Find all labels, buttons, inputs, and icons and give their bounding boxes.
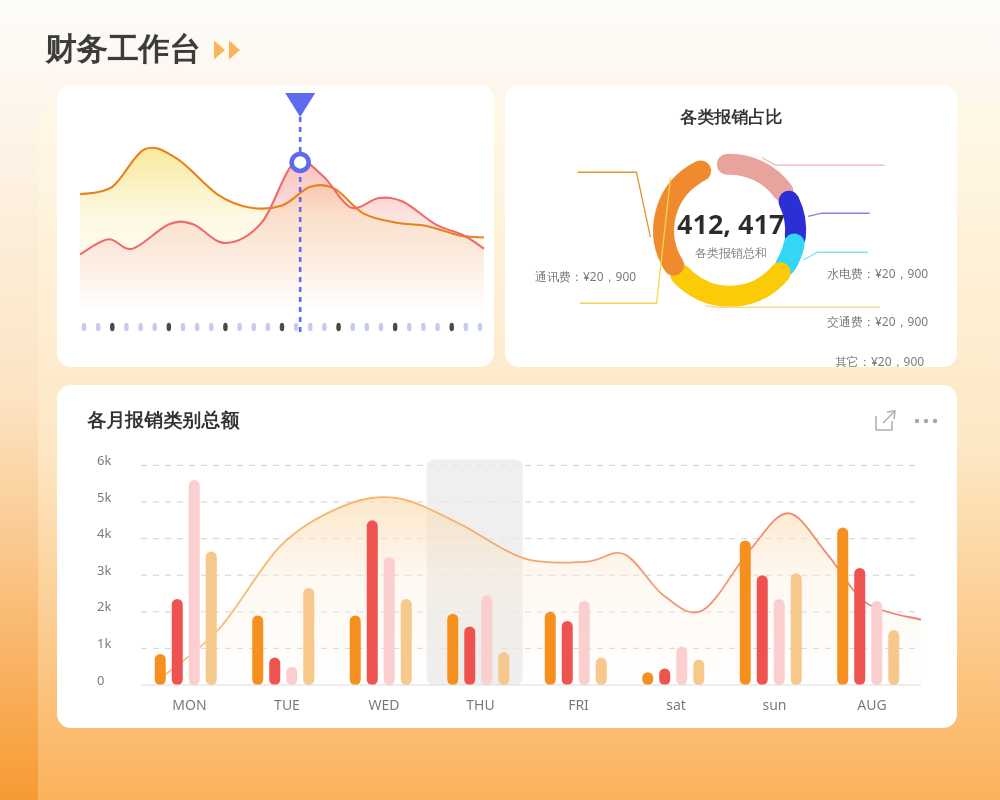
button[interactable]: More options <box>913 407 941 435</box>
button[interactable]: Share <box>871 407 899 435</box>
staticText: 通讯费：¥20，900 <box>535 268 637 284</box>
staticText: FRI <box>568 695 589 714</box>
staticText: AUG <box>857 695 887 714</box>
staticText: 4k <box>97 524 112 542</box>
staticText: 各类报销总和 <box>695 245 767 260</box>
staticText: 各月报销类别总额 <box>87 409 239 433</box>
staticText: 3k <box>97 561 112 579</box>
staticText: TUE <box>274 695 300 714</box>
staticText: 5k <box>97 488 112 506</box>
staticText: 其它：¥20，900 <box>835 353 925 367</box>
staticText: 交通费：¥20，900 <box>827 313 929 329</box>
staticText: sat <box>666 695 686 714</box>
staticText: 1k <box>97 634 112 652</box>
button[interactable]: 财务工作台 <box>45 30 250 69</box>
staticText: THU <box>466 695 495 714</box>
staticText: 2k <box>97 597 112 615</box>
staticText: 水电费：¥20，900 <box>827 265 929 281</box>
staticText: 各类报销占比 <box>680 107 782 128</box>
staticText: MON <box>172 695 207 714</box>
staticText: 6k <box>97 451 112 469</box>
staticText: 0 <box>97 671 105 689</box>
staticText: sun <box>762 695 787 714</box>
staticText: 412, 417 <box>677 205 785 242</box>
staticText: 财务工作台 <box>45 30 200 69</box>
staticText: WED <box>368 695 400 714</box>
